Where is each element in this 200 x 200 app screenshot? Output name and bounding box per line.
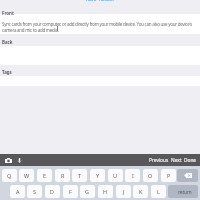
button[interactable]: Next — [171, 157, 182, 164]
staticText: U — [113, 172, 118, 179]
staticText: S — [33, 188, 37, 195]
staticText: E — [43, 172, 47, 179]
button[interactable]: Y — [90, 169, 105, 182]
staticText: return — [178, 189, 192, 195]
staticText: Back — [2, 39, 13, 45]
staticText: W — [24, 172, 30, 179]
button[interactable]: Deck: Default — [86, 0, 115, 1]
button[interactable]: S — [27, 185, 42, 198]
button[interactable]: Done — [184, 157, 197, 164]
button[interactable]: W — [19, 169, 34, 182]
staticText: J — [123, 188, 125, 195]
staticText: Done — [184, 157, 197, 164]
button[interactable]: L — [151, 185, 166, 198]
button[interactable]: Previous — [149, 157, 169, 164]
button[interactable]: U — [108, 169, 123, 182]
button[interactable]: A — [10, 185, 25, 198]
staticText: Q — [7, 172, 12, 179]
staticText: O — [148, 172, 153, 179]
button[interactable]: D — [45, 185, 60, 198]
button[interactable]: return — [168, 185, 198, 198]
button[interactable]: R — [55, 169, 70, 182]
staticText: L — [157, 188, 160, 195]
staticText: R — [61, 172, 65, 179]
staticText: Y — [96, 172, 100, 179]
staticText: K — [139, 188, 143, 195]
button[interactable]: Q — [2, 169, 17, 182]
button[interactable]: H — [98, 185, 113, 198]
button[interactable]: G — [80, 185, 95, 198]
staticText: Sync cards from your computer, or add di… — [2, 21, 198, 33]
button[interactable]: I — [125, 169, 140, 182]
staticText: I — [132, 172, 134, 179]
staticText: T — [78, 172, 82, 179]
button[interactable]: F — [63, 185, 78, 198]
button[interactable]: T — [72, 169, 87, 182]
button[interactable]: O — [143, 169, 158, 182]
staticText: Next — [171, 157, 182, 164]
staticText: F — [69, 188, 72, 195]
button[interactable]: E — [37, 169, 52, 182]
staticText: D — [50, 188, 55, 195]
staticText: G — [85, 188, 90, 195]
staticText: Tags — [2, 69, 12, 75]
button[interactable]: Back — [2, 39, 13, 45]
button[interactable]: K — [133, 185, 148, 198]
button[interactable]: P — [161, 169, 176, 182]
button[interactable]: J — [116, 185, 131, 198]
staticText: P — [167, 172, 171, 179]
staticText: Previous — [149, 157, 169, 164]
staticText: A — [16, 188, 20, 195]
button[interactable]: Backspace — [177, 169, 198, 182]
button[interactable]: Add photo — [2, 154, 14, 166]
button[interactable]: Tags — [2, 69, 12, 75]
button[interactable]: Front — [2, 10, 14, 16]
button[interactable]: Sync cards from your computer, or add di… — [0, 14, 200, 34]
staticText: Front — [2, 10, 14, 16]
button[interactable]: Record audio — [15, 154, 23, 166]
staticText: H — [103, 188, 108, 195]
